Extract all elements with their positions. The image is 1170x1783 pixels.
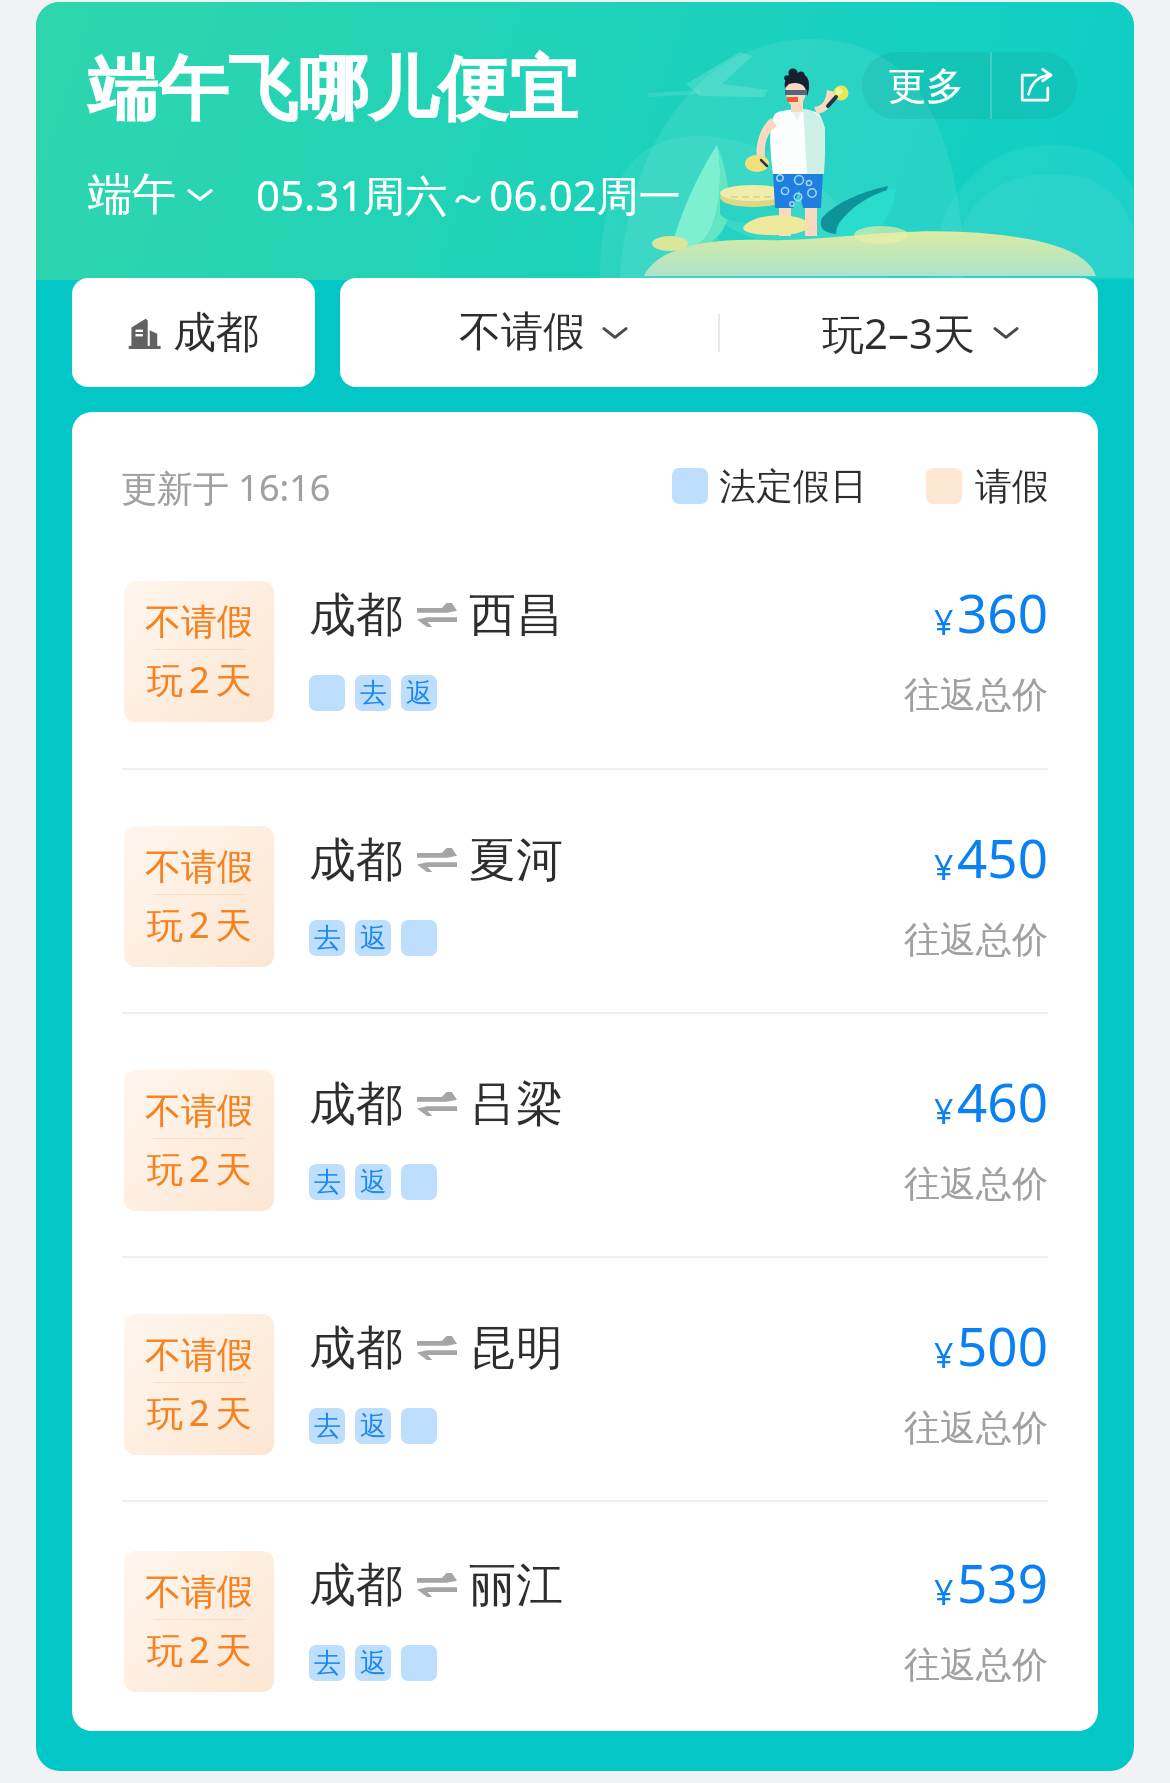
staticText: 不请假 [145, 599, 253, 644]
staticText: 夏河 [469, 831, 563, 890]
staticText: 去 [314, 1646, 341, 1680]
staticText: 法定假日 [719, 463, 867, 510]
staticText: 请假 [975, 463, 1049, 510]
button[interactable]: 不请假 [72, 1502, 1098, 1731]
staticText: 返 [360, 1165, 387, 1199]
staticText: 玩2–3天 [822, 304, 976, 361]
button[interactable]: 不请假 [340, 278, 718, 387]
staticText: 去 [360, 676, 387, 710]
staticText: 往返总价 [904, 1405, 1048, 1450]
staticText: 539 [957, 1546, 1048, 1618]
staticText: 往返总价 [904, 1642, 1048, 1687]
staticText: ¥ [934, 1332, 954, 1378]
button[interactable]: 更多 [862, 52, 990, 119]
staticText: 不请假 [145, 1569, 253, 1614]
staticText: 玩 2 天 [147, 1388, 252, 1437]
staticText: 成都 [309, 1319, 403, 1378]
staticText: 往返总价 [904, 917, 1048, 962]
staticText: 返 [360, 921, 387, 955]
staticText: 玩 2 天 [147, 1625, 252, 1674]
staticText: 玩 2 天 [147, 900, 252, 949]
staticText: 返 [360, 1409, 387, 1443]
staticText: 返 [406, 676, 433, 710]
button[interactable]: Share [992, 52, 1077, 119]
button[interactable]: 玩2–3天 [720, 278, 1098, 387]
staticText: 成都 [173, 306, 259, 360]
staticText: 不请假 [145, 844, 253, 889]
staticText: 昆明 [469, 1319, 563, 1378]
button[interactable]: 成都 [72, 278, 315, 387]
button[interactable]: 不请假 [72, 770, 1098, 1012]
staticText: 西昌 [469, 586, 563, 645]
staticText: 成都 [309, 1075, 403, 1134]
staticText: 成都 [309, 1556, 403, 1615]
staticText: 玩 2 天 [147, 1144, 252, 1193]
staticText: 端午 [88, 167, 176, 222]
staticText: 360 [957, 576, 1048, 648]
staticText: 往返总价 [904, 672, 1048, 717]
staticText: 成都 [309, 831, 403, 890]
staticText: 500 [957, 1309, 1048, 1381]
staticText: ¥ [934, 599, 954, 645]
staticText: 去 [314, 921, 341, 955]
staticText: 460 [957, 1065, 1048, 1137]
staticText: 往返总价 [904, 1161, 1048, 1206]
staticText: 不请假 [145, 1088, 253, 1133]
staticText: 去 [314, 1165, 341, 1199]
staticText: 更新于 16:16 [121, 463, 331, 512]
staticText: 450 [957, 821, 1048, 893]
staticText: 返 [360, 1646, 387, 1680]
staticText: 玩 2 天 [147, 655, 252, 704]
button[interactable]: 不请假 [72, 525, 1098, 768]
staticText: ¥ [934, 1569, 954, 1615]
staticText: 不请假 [459, 306, 585, 359]
staticText: 端午飞哪儿便宜 [88, 46, 578, 134]
staticText: ¥ [934, 844, 954, 890]
staticText: 不请假 [145, 1332, 253, 1377]
staticText: 05.31周六～06.02周一 [256, 166, 681, 223]
staticText: ¥ [934, 1088, 954, 1134]
staticText: 去 [314, 1409, 341, 1443]
staticText: 成都 [309, 586, 403, 645]
staticText: 丽江 [469, 1556, 563, 1615]
button[interactable]: 不请假 [72, 1014, 1098, 1256]
staticText: 更多 [888, 62, 964, 110]
button[interactable]: 不请假 [72, 1258, 1098, 1500]
staticText: 吕梁 [469, 1075, 563, 1134]
